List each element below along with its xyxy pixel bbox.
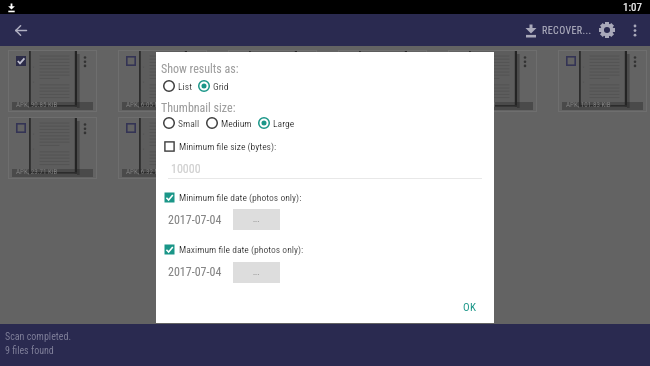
staticText: 10000 xyxy=(171,162,201,176)
staticText: Maximum file date (photos only): xyxy=(179,244,304,255)
staticText: APK, 90.85 KiB xyxy=(16,101,58,109)
staticText: Thumbnail size: xyxy=(161,101,236,115)
button[interactable]: Maximum file date (photos only): xyxy=(164,244,304,255)
button[interactable]: File options xyxy=(8,117,97,179)
button[interactable]: Minimum file size (bytes): xyxy=(164,141,277,152)
button[interactable]: Minimum file date (photos only): xyxy=(164,192,302,203)
staticText: List xyxy=(178,81,192,92)
staticText: Minimum file date (photos only): xyxy=(179,192,302,203)
staticText: Minimum file size (bytes): xyxy=(179,141,277,152)
button[interactable]: Small xyxy=(163,117,200,129)
button[interactable]: File options xyxy=(558,50,647,112)
staticText: APK, 23.71 KiB xyxy=(16,168,58,176)
button[interactable]: OK xyxy=(455,296,485,319)
staticText: Grid xyxy=(213,81,229,92)
staticText: ... xyxy=(253,215,260,224)
staticText: RECOVER... xyxy=(542,25,592,37)
staticText: 2017-07-04 xyxy=(168,265,222,279)
staticText: 1:07 xyxy=(623,1,642,14)
button[interactable]: File options xyxy=(80,55,90,65)
staticText: Large xyxy=(273,118,295,129)
staticText: 9 files found xyxy=(5,345,54,357)
button[interactable]: RECOVER... xyxy=(525,19,592,42)
button[interactable]: File options xyxy=(338,50,427,112)
button[interactable]: File options xyxy=(118,117,207,179)
button[interactable]: Grid xyxy=(198,80,229,92)
staticText: Medium xyxy=(221,118,252,129)
button[interactable]: File options xyxy=(228,117,317,179)
staticText: OK xyxy=(463,301,477,314)
button[interactable]: More options xyxy=(622,14,648,46)
button[interactable]: File options xyxy=(80,122,90,132)
button[interactable]: File options xyxy=(520,55,530,65)
button[interactable]: File options xyxy=(448,50,537,112)
button[interactable]: Large xyxy=(258,117,295,129)
button[interactable]: Medium xyxy=(206,117,252,129)
staticText: 2017-07-04 xyxy=(168,213,222,227)
button[interactable]: File options xyxy=(228,50,317,112)
button[interactable]: Settings xyxy=(592,14,622,46)
staticText: Small xyxy=(178,118,200,129)
staticText: Show results as: xyxy=(161,62,239,76)
button[interactable]: Back xyxy=(0,14,42,46)
button[interactable]: File options xyxy=(630,55,640,65)
button[interactable]: List xyxy=(163,80,192,92)
staticText: ... xyxy=(253,268,260,277)
button[interactable]: File options xyxy=(190,122,200,132)
staticText: APK, 6.05 MiB xyxy=(126,101,166,109)
button[interactable]: File options xyxy=(118,50,207,112)
staticText: APK, 101.83 KiB xyxy=(566,101,611,109)
button[interactable]: File options xyxy=(8,50,97,112)
staticText: APK, 5.62 MiB xyxy=(456,101,496,109)
staticText: Scan completed. xyxy=(5,331,72,343)
staticText: APK, 6.32 MiB xyxy=(126,168,166,176)
